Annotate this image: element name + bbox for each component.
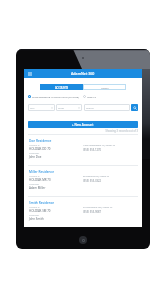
staticText: John Smith [29, 217, 44, 221]
staticText: Account # [29, 144, 40, 147]
staticText: Smith Residence [29, 201, 55, 205]
button[interactable]: Search [131, 104, 138, 111]
staticText: HOLIDAY-MR 70 [29, 178, 51, 182]
button[interactable]: City [28, 104, 55, 111]
staticText: Miller Residence [29, 170, 54, 174]
staticText: Account # [29, 175, 40, 178]
button[interactable]: ACCOUNTS [40, 84, 83, 90]
staticText: Search [86, 106, 94, 109]
staticText: Showing 3 records out of 3 [28, 129, 138, 133]
staticText: (555) 555-3322 [83, 179, 101, 183]
staticText: Account # [29, 206, 40, 209]
staticText: ACCOUNTS [55, 86, 69, 89]
staticText: View All [87, 95, 97, 98]
button[interactable]: Miller Residence [28, 165, 138, 196]
staticText: (555) 555-9087 [83, 210, 101, 214]
staticText: (555) 555-1270 [83, 148, 101, 152]
staticText: HOLIDAY-SM 70 [29, 209, 51, 213]
button[interactable]: USERS [83, 84, 126, 90]
staticText: Doe Residence [29, 139, 52, 143]
staticText: State [58, 106, 64, 109]
staticText: USERS [101, 86, 109, 89]
staticText: Adam Miller [29, 186, 46, 190]
staticText: AdamNet 360 [71, 71, 95, 76]
button[interactable]: View All [83, 95, 97, 98]
button[interactable]: Search [84, 104, 130, 111]
staticText: Show Repairing Accounts Only (To Date) [32, 95, 79, 98]
staticText: John Doe [29, 155, 42, 159]
button[interactable]: Doe Residence [28, 134, 138, 165]
button[interactable]: Menu [26, 70, 33, 77]
button[interactable]: Smith Residence [28, 196, 138, 227]
staticText: Customer [29, 183, 40, 186]
staticText: 210 Brookline Ave, Austin TX [83, 206, 113, 209]
staticText: Customer [29, 152, 40, 155]
button[interactable]: + New Account [28, 121, 138, 128]
staticText: Customer [29, 214, 40, 217]
staticText: City [30, 106, 35, 109]
staticText: HOLIDAY-DD 70 [29, 147, 51, 151]
button[interactable]: Show Repairing Accounts Only (To Date) [28, 95, 79, 98]
button[interactable]: State [56, 104, 82, 111]
staticText: 88 Oakhurst Dr, Austin TX [83, 175, 110, 178]
staticText: 1450 Meadowlark Ln, Austin TX [83, 144, 116, 147]
staticText: + New Account [72, 123, 94, 127]
